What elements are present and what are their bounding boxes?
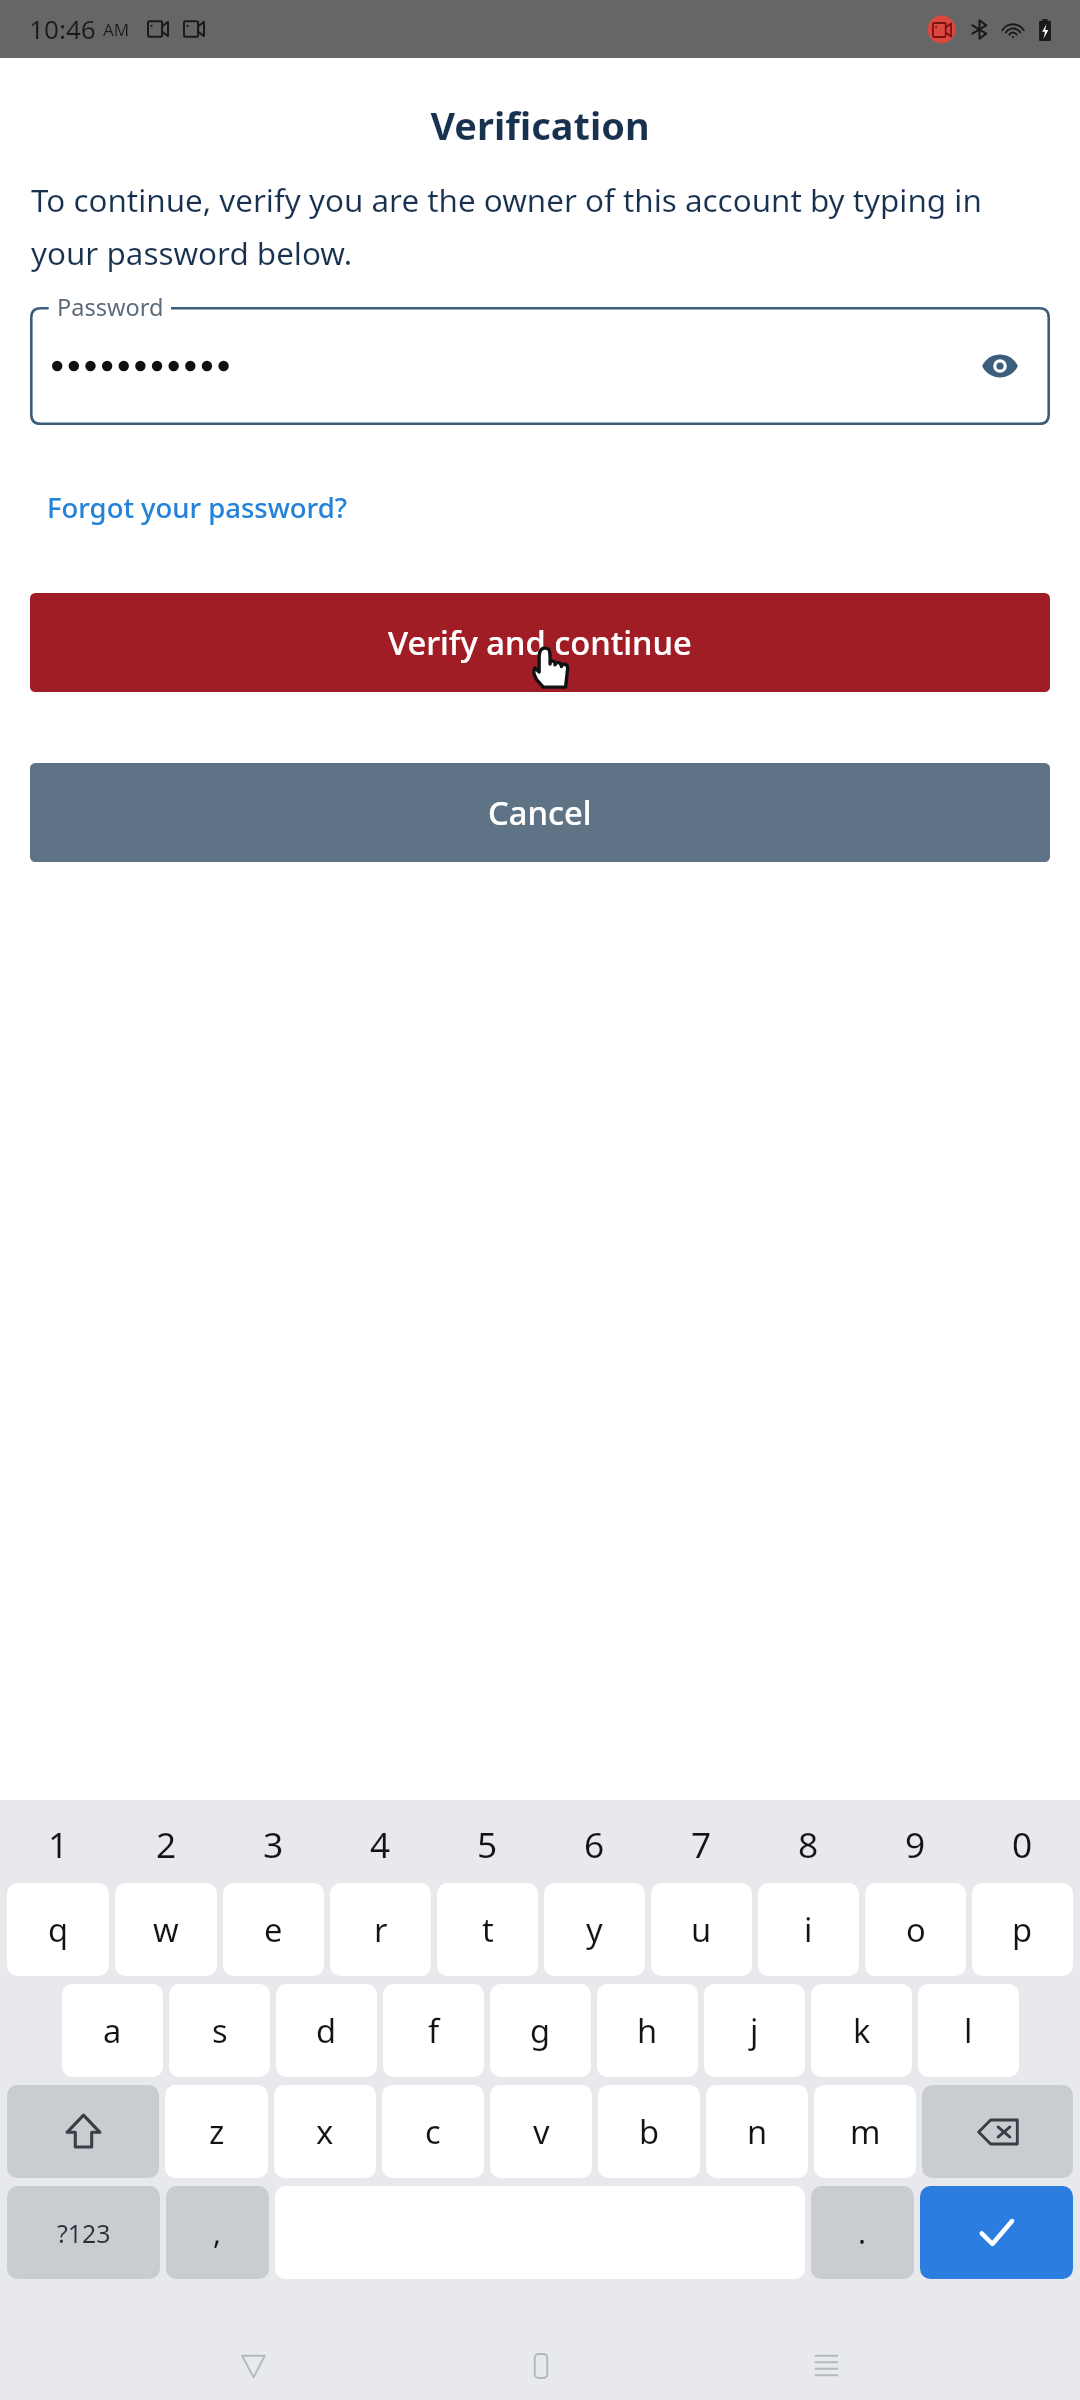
staticText: h — [637, 2008, 658, 2053]
staticText: , — [213, 2212, 222, 2253]
staticText: v — [533, 2109, 550, 2154]
button[interactable]: Recents — [794, 2333, 859, 2398]
staticText: o — [906, 1907, 926, 1952]
staticText: m — [850, 2109, 881, 2154]
staticText: 0 — [1012, 1820, 1033, 1868]
button[interactable]: 0 — [969, 1810, 1076, 1878]
staticText: t — [482, 1907, 494, 1952]
button[interactable]: Back — [221, 2333, 286, 2398]
button[interactable]: p — [972, 1883, 1073, 1976]
staticText: r — [374, 1907, 388, 1952]
staticText: Verification — [0, 99, 1080, 151]
staticText: k — [853, 2008, 871, 2053]
button[interactable]: Password — [30, 307, 1050, 425]
button[interactable]: e — [223, 1883, 324, 1976]
button[interactable]: d — [276, 1984, 377, 2077]
button[interactable]: Show password — [972, 338, 1028, 394]
staticText: Cancel — [488, 790, 592, 835]
button[interactable]: y — [544, 1883, 645, 1976]
staticText: p — [1012, 1907, 1033, 1952]
button[interactable]: 4 — [327, 1810, 434, 1878]
button[interactable]: v — [490, 2085, 592, 2178]
staticText: Verify and continue — [388, 620, 692, 665]
staticText: q — [48, 1907, 69, 1952]
staticText: 3 — [263, 1820, 284, 1868]
button[interactable]: k — [811, 1984, 912, 2077]
staticText: . — [858, 2212, 867, 2253]
staticText: u — [691, 1907, 712, 1952]
staticText: 5 — [477, 1820, 498, 1868]
button[interactable]: 1 — [4, 1810, 112, 1878]
staticText: l — [964, 2008, 973, 2053]
staticText: 4 — [370, 1820, 391, 1868]
button[interactable]: o — [865, 1883, 966, 1976]
staticText: s — [212, 2008, 228, 2053]
staticText: 1 — [48, 1820, 69, 1868]
button[interactable]: 7 — [648, 1810, 755, 1878]
button[interactable]: u — [651, 1883, 752, 1976]
staticText: g — [530, 2008, 551, 2053]
staticText: 8 — [798, 1820, 819, 1868]
button[interactable]: x — [274, 2085, 376, 2178]
staticText: To continue, verify you are the owner of… — [31, 178, 1049, 274]
button[interactable]: b — [598, 2085, 700, 2178]
button[interactable]: s — [169, 1984, 270, 2077]
staticText: ?123 — [57, 2216, 111, 2250]
button[interactable]: i — [758, 1883, 859, 1976]
button[interactable]: c — [382, 2085, 484, 2178]
button[interactable]: 6 — [541, 1810, 648, 1878]
staticText: e — [264, 1907, 283, 1952]
staticText: i — [804, 1907, 813, 1952]
staticText: f — [428, 2008, 440, 2053]
button[interactable]: j — [704, 1984, 805, 2077]
staticText: d — [316, 2008, 337, 2053]
button[interactable]: m — [814, 2085, 916, 2178]
staticText: 7 — [691, 1820, 712, 1868]
staticText: 9 — [905, 1820, 926, 1868]
button[interactable]: q — [7, 1883, 109, 1976]
button[interactable]: Backspace — [922, 2085, 1073, 2178]
button[interactable]: r — [330, 1883, 431, 1976]
button[interactable]: a — [62, 1984, 163, 2077]
staticText: x — [316, 2109, 334, 2154]
button[interactable]: Home — [508, 2333, 573, 2398]
button[interactable]: g — [490, 1984, 591, 2077]
button[interactable]: Shift — [7, 2085, 159, 2178]
button[interactable]: h — [597, 1984, 698, 2077]
button[interactable]: t — [437, 1883, 538, 1976]
staticText: w — [153, 1907, 179, 1952]
staticText: a — [103, 2008, 122, 2053]
staticText: y — [586, 1907, 603, 1952]
staticText: AM — [103, 18, 130, 41]
staticText: 6 — [584, 1820, 605, 1868]
staticText: n — [747, 2109, 768, 2154]
staticText: j — [750, 2008, 759, 2053]
button[interactable]: , — [166, 2186, 269, 2279]
button[interactable]: n — [706, 2085, 808, 2178]
staticText: 2 — [156, 1820, 177, 1868]
button[interactable]: Forgot your password? — [43, 485, 351, 530]
staticText: z — [209, 2109, 225, 2154]
button[interactable]: w — [115, 1883, 217, 1976]
button[interactable]: Cancel — [30, 763, 1050, 862]
button[interactable]: 5 — [434, 1810, 541, 1878]
staticText: Password — [57, 291, 164, 323]
button[interactable]: 9 — [862, 1810, 969, 1878]
staticText: b — [639, 2109, 660, 2154]
button[interactable]: f — [383, 1984, 484, 2077]
button[interactable]: Enter — [920, 2186, 1073, 2279]
staticText: c — [425, 2109, 441, 2154]
button[interactable]: l — [918, 1984, 1019, 2077]
button[interactable]: 2 — [112, 1810, 220, 1878]
button[interactable]: Verify and continue — [30, 593, 1050, 692]
staticText: 10:46 — [29, 11, 96, 47]
button[interactable]: 3 — [220, 1810, 327, 1878]
staticText: Forgot your password? — [47, 489, 347, 526]
button[interactable]: ?123 — [7, 2186, 160, 2279]
button[interactable]: . — [811, 2186, 914, 2279]
button[interactable]: 8 — [755, 1810, 862, 1878]
button[interactable]: z — [165, 2085, 268, 2178]
